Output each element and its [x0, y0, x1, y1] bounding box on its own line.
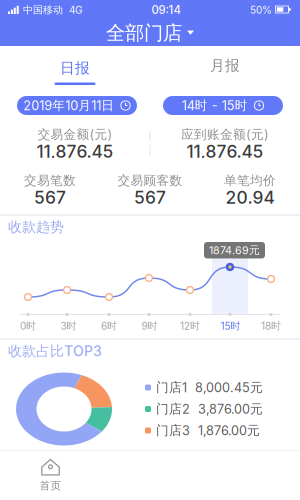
button[interactable]: 14时 - 15时: [163, 96, 283, 115]
staticText: 日报: [60, 59, 90, 77]
staticText: 1,876.00元: [198, 422, 260, 438]
staticText: 门店3: [156, 422, 190, 438]
staticText: 18时: [261, 320, 281, 332]
button[interactable]: 日报: [0, 46, 150, 85]
staticText: 50%: [250, 4, 275, 16]
staticText: 2019年10月11日: [23, 97, 114, 113]
button[interactable]: 首页: [13, 455, 88, 495]
staticText: 交易顾客数: [117, 172, 182, 188]
staticText: 门店2: [156, 401, 190, 417]
staticText: 交易金额(元): [37, 126, 112, 142]
staticText: 单笔均价: [224, 172, 276, 188]
button[interactable]: 2019年10月11日: [17, 96, 137, 115]
staticText: 应到账金额(元): [181, 126, 269, 142]
staticText: 20.94: [225, 187, 274, 208]
staticText: 8,000.45元: [195, 379, 263, 395]
staticText: 全部门店: [106, 21, 182, 45]
staticText: 交易笔数: [24, 172, 76, 188]
staticText: 15时: [221, 320, 241, 332]
staticText: 3,876.00元: [198, 401, 263, 417]
staticText: 12时: [180, 320, 200, 332]
staticText: 3时: [60, 320, 76, 332]
staticText: 09:14: [151, 3, 180, 17]
staticText: 收款占比TOP3: [8, 342, 102, 360]
staticText: 收款趋势: [8, 218, 64, 236]
staticText: 1874.69元: [209, 243, 260, 257]
staticText: 6时: [101, 320, 117, 332]
staticText: 0时: [20, 320, 36, 332]
staticText: 11,876.45: [36, 141, 113, 162]
staticText: 567: [134, 187, 166, 208]
staticText: 中国移动 4G: [20, 4, 82, 16]
staticText: 月报: [210, 56, 240, 75]
button[interactable]: 月报: [150, 46, 300, 85]
staticText: 首页: [39, 479, 61, 492]
button[interactable]: 全部门店: [98, 20, 202, 46]
staticText: 门店1: [156, 379, 187, 395]
staticText: 567: [34, 187, 66, 208]
staticText: 14时 - 15时: [182, 97, 248, 113]
staticText: 11,876.45: [186, 141, 263, 162]
staticText: 9时: [142, 320, 158, 332]
